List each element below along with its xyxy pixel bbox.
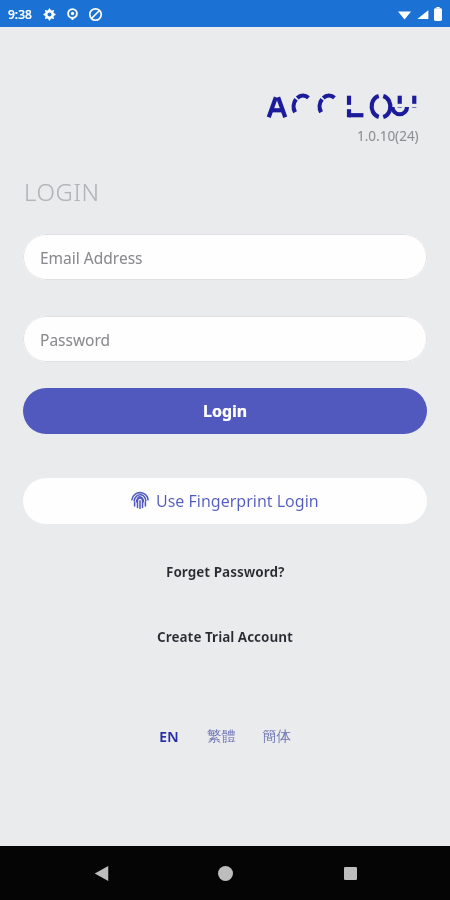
button[interactable]: Recent apps [326, 849, 374, 897]
staticText: EN [159, 726, 179, 746]
button[interactable]: Forget Password? [154, 559, 297, 585]
staticText: 1.0.10(24) [357, 127, 419, 145]
staticText: Login [203, 400, 248, 422]
button[interactable]: 簡体 [254, 723, 299, 749]
staticText: 繁體 [207, 727, 236, 745]
staticText: Email Address [40, 247, 143, 268]
staticText: Forget Password? [166, 563, 285, 581]
button[interactable]: Password [23, 316, 427, 362]
staticText: Create Trial Account [157, 628, 293, 646]
button[interactable]: 繁體 [199, 723, 244, 749]
staticText: 簡体 [262, 727, 291, 745]
button[interactable]: Login [23, 388, 427, 434]
button[interactable]: Back [77, 849, 125, 897]
button[interactable]: Use Fingerprint Login [23, 478, 427, 524]
button[interactable]: Home [201, 849, 249, 897]
button[interactable]: Email Address [23, 234, 427, 280]
staticText: LOGIN [24, 175, 100, 208]
staticText: Use Fingerprint Login [156, 490, 319, 512]
other: ACCLOU logo [264, 93, 420, 120]
staticText: 9:38 [8, 6, 32, 22]
staticText: Password [40, 329, 111, 350]
button[interactable]: Create Trial Account [145, 624, 305, 650]
button[interactable]: EN [151, 722, 187, 750]
